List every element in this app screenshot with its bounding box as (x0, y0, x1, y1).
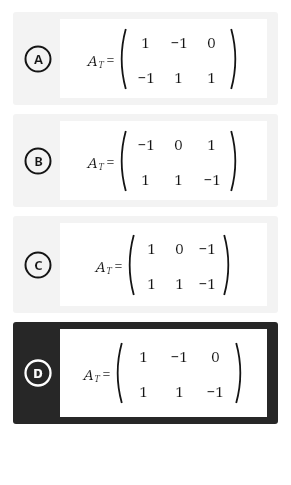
staticText: A (87, 152, 98, 172)
staticText: T (98, 160, 104, 172)
staticText: 1 (139, 381, 148, 401)
staticText: 1 (175, 273, 184, 293)
staticText: 1 (147, 273, 156, 293)
button[interactable]: Option B (13, 114, 278, 207)
staticText: = (102, 363, 111, 383)
staticText: 1 (141, 169, 150, 189)
staticText: 0 (175, 238, 184, 258)
staticText: T (94, 372, 100, 384)
staticText: −1 (170, 346, 188, 366)
staticText: A (83, 364, 94, 384)
staticText: 1 (207, 134, 216, 154)
staticText: −1 (198, 273, 216, 293)
staticText: 0 (207, 32, 216, 52)
button[interactable]: Option A (13, 12, 278, 105)
button[interactable]: Option C (13, 216, 278, 313)
button[interactable]: Option D (13, 322, 278, 424)
staticText: −1 (137, 67, 155, 87)
staticText: 1 (139, 346, 148, 366)
staticText: −1 (137, 134, 155, 154)
staticText: 1 (207, 67, 216, 87)
staticText: = (106, 49, 115, 69)
staticText: −1 (170, 32, 188, 52)
staticText: −1 (206, 381, 224, 401)
staticText: = (106, 151, 115, 171)
staticText: A (87, 50, 98, 70)
staticText: = (114, 255, 123, 275)
staticText: 1 (141, 32, 150, 52)
staticText: −1 (203, 169, 221, 189)
staticText: 1 (175, 381, 184, 401)
staticText: 0 (174, 134, 183, 154)
staticText: −1 (198, 238, 216, 258)
staticText: D (33, 364, 43, 382)
staticText: 1 (174, 169, 183, 189)
staticText: 1 (174, 67, 183, 87)
staticText: T (98, 58, 104, 70)
staticText: 0 (211, 346, 220, 366)
staticText: B (34, 152, 43, 170)
staticText: T (106, 264, 112, 276)
staticText: 1 (147, 238, 156, 258)
staticText: A (34, 50, 43, 68)
staticText: C (34, 256, 43, 274)
staticText: A (95, 256, 106, 276)
